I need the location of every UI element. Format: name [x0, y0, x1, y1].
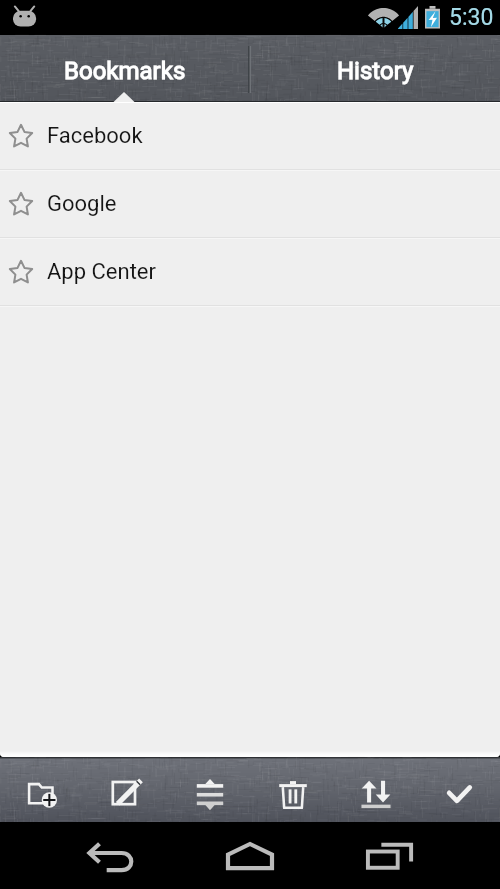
button[interactable]: Back — [64, 822, 158, 889]
button[interactable]: Edit — [84, 757, 168, 822]
button[interactable]: Done — [417, 757, 500, 822]
button[interactable]: Facebook — [0, 103, 500, 169]
button[interactable]: Delete — [251, 757, 334, 822]
staticText: App Center — [47, 259, 156, 285]
button[interactable]: Sort — [168, 757, 251, 822]
button[interactable]: Home — [203, 822, 297, 889]
staticText: Google — [47, 191, 117, 217]
button[interactable]: Google — [0, 171, 500, 237]
button[interactable]: History — [250, 35, 500, 101]
button[interactable]: Bookmarks — [0, 35, 250, 101]
staticText: Bookmarks — [64, 57, 186, 85]
button[interactable]: Recent apps — [343, 822, 437, 889]
staticText: Facebook — [47, 123, 143, 149]
staticText: 5:30 — [449, 4, 494, 31]
button[interactable]: New folder — [0, 757, 84, 822]
button[interactable]: App Center — [0, 239, 500, 305]
staticText: History — [337, 57, 414, 85]
button[interactable]: Import and export bookmarks — [334, 757, 417, 822]
